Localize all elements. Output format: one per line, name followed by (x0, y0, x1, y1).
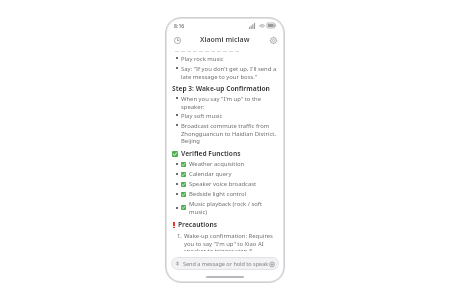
staticText: Calendar query (189, 170, 232, 178)
staticText: 8:16 (174, 22, 185, 29)
staticText: Xiaomi miclaw (200, 35, 250, 45)
staticText: Send a message or hold to speak (183, 260, 269, 267)
button[interactable]: Weather acquisition (176, 160, 278, 168)
button[interactable]: Send a message or hold to speak (171, 257, 279, 270)
staticText: Step 3: Wake-up Confirmation (172, 84, 270, 93)
staticText: Speaker voice broadcast (189, 180, 257, 188)
button[interactable]: Music playback (rock / soft music) (176, 200, 278, 215)
staticText: 1. (177, 232, 182, 240)
staticText: Music playback (rock / soft music) (189, 200, 278, 215)
button[interactable]: Bedside light control (176, 190, 278, 198)
staticText: Weather acquisition (189, 160, 245, 168)
button[interactable]: More options (269, 260, 275, 268)
staticText: When you say "I'm up" to the speaker: (181, 95, 278, 110)
staticText: Broadcast commute traffic from Zhongguan… (181, 122, 278, 144)
staticText: Wake-up confirmation: Requires you to sa… (184, 232, 278, 251)
staticText: Play soft music (181, 112, 223, 120)
staticText: Play rock music (181, 55, 224, 63)
staticText: Say: "If you don't get up, I'll send a l… (181, 65, 278, 80)
button[interactable]: Calendar query (176, 170, 278, 178)
staticText: Verified Functions (181, 149, 241, 158)
button[interactable]: Settings (267, 34, 279, 46)
staticText: Precautions (178, 220, 218, 229)
staticText: Bedside light control (189, 190, 247, 198)
button[interactable]: Speaker voice broadcast (176, 180, 278, 188)
button[interactable]: History (171, 34, 183, 46)
